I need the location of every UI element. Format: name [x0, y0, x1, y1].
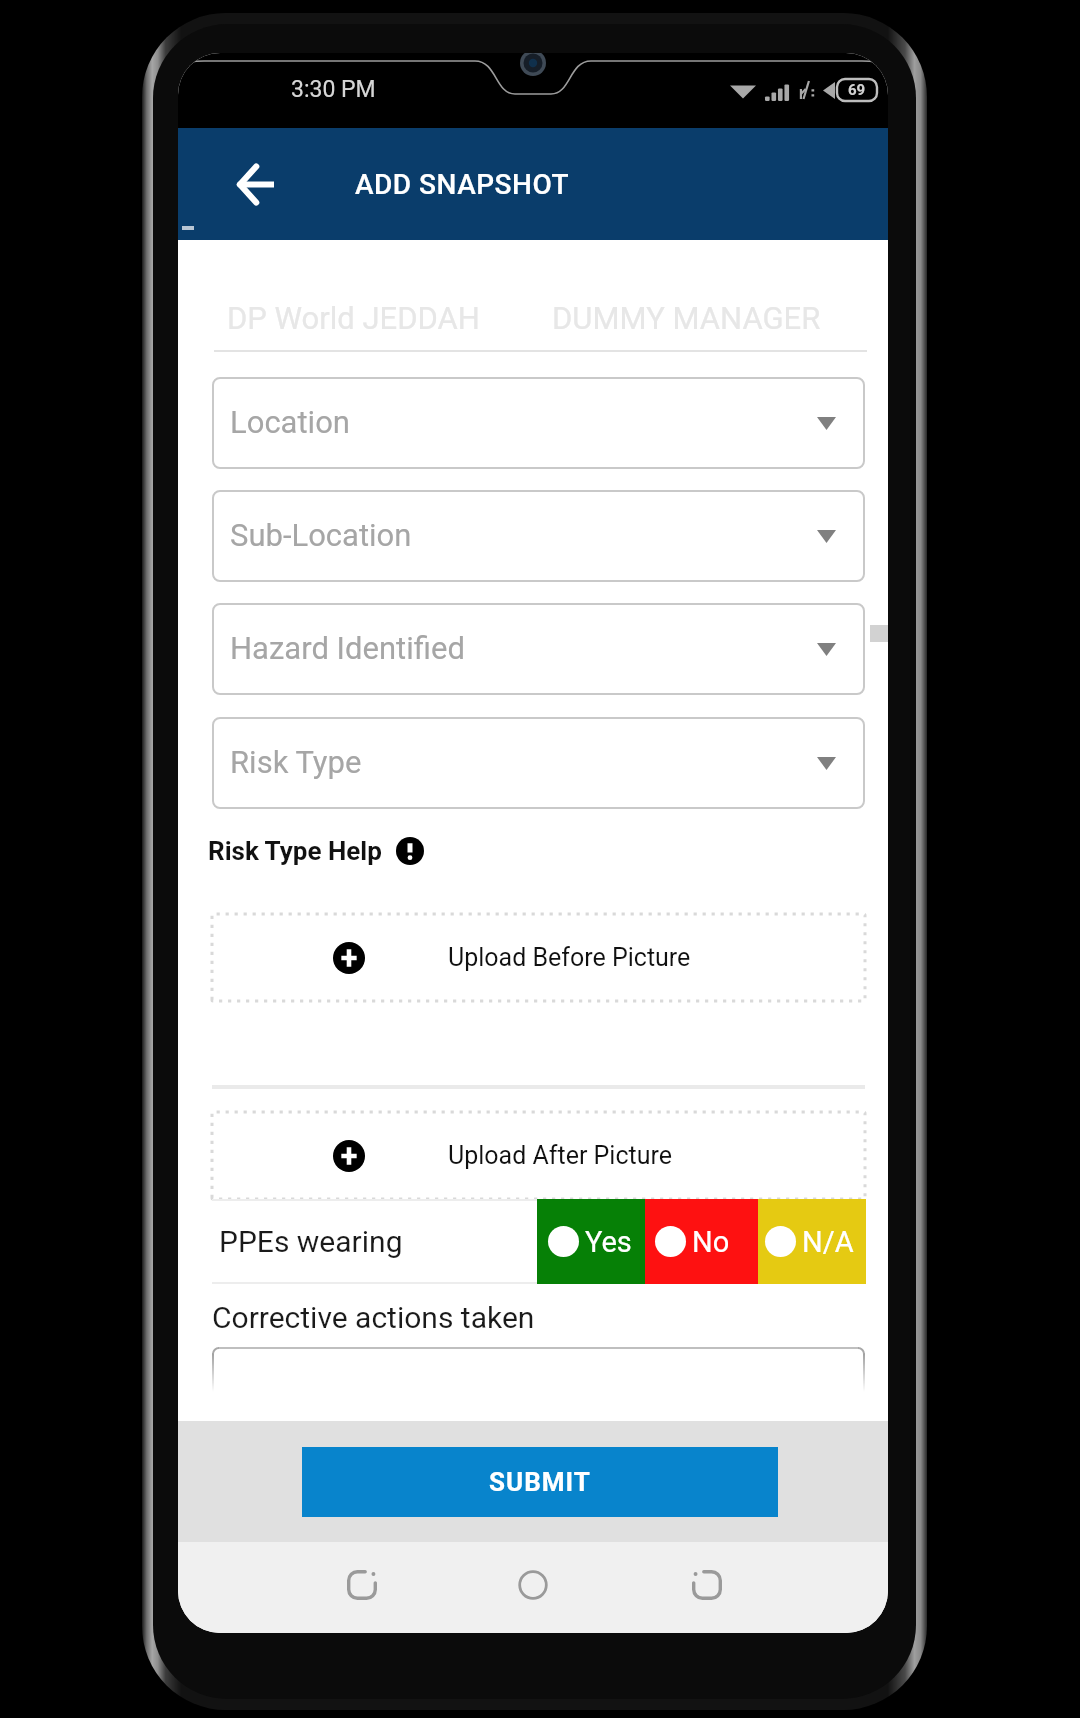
staticText: DUMMY MANAGER — [552, 300, 821, 336]
staticText: N/A — [802, 1225, 854, 1259]
staticText: No — [692, 1225, 730, 1259]
staticText: Upload After Picture — [448, 1141, 672, 1170]
staticText: Sub-Location — [230, 517, 412, 553]
staticText: PPEs wearing — [219, 1224, 403, 1259]
staticText: Yes — [585, 1225, 632, 1259]
button[interactable]: Risk Type Help — [208, 836, 424, 866]
button[interactable]: Back — [681, 1559, 733, 1611]
staticText: Corrective actions taken — [212, 1300, 535, 1335]
staticText: Hazard Identified — [230, 630, 465, 666]
button[interactable]: SUBMIT — [302, 1447, 778, 1517]
staticText: Risk Type — [230, 744, 362, 780]
button[interactable]: Home — [507, 1559, 559, 1611]
button[interactable]: Location — [212, 377, 865, 469]
button[interactable]: No — [645, 1199, 758, 1284]
button[interactable]: N/A — [758, 1199, 866, 1284]
staticText: Location — [230, 404, 350, 440]
button[interactable]: Hazard Identified — [212, 603, 865, 695]
staticText: ADD SNAPSHOT — [355, 168, 570, 201]
button[interactable]: Sub-Location — [212, 490, 865, 582]
button[interactable]: Back — [224, 153, 286, 215]
button[interactable]: Risk Type — [212, 717, 865, 809]
staticText: DP World JEDDAH — [227, 300, 480, 336]
staticText: Upload Before Picture — [448, 943, 691, 972]
button[interactable]: Yes — [537, 1199, 645, 1284]
staticText: 69 — [848, 81, 866, 99]
staticText: Risk Type Help — [208, 836, 382, 866]
button[interactable]: Recent apps — [336, 1559, 388, 1611]
staticText: SUBMIT — [489, 1467, 591, 1497]
button[interactable]: Upload After Picture — [212, 1112, 865, 1199]
button[interactable]: Upload Before Picture — [212, 914, 865, 1001]
staticText: 3:30 PM — [291, 76, 376, 103]
